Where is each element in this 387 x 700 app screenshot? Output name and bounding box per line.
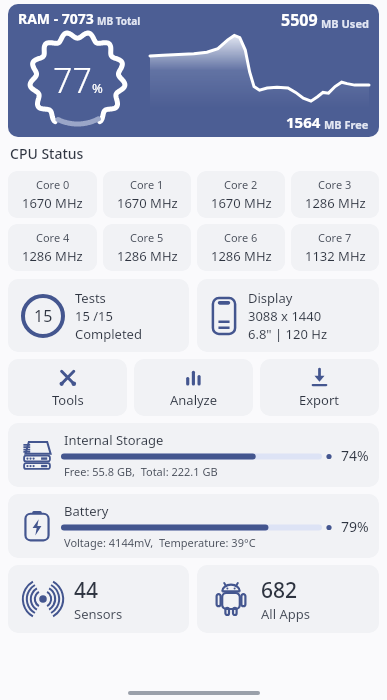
staticText: Analyze [170, 391, 218, 409]
staticText: 1132 MHz [305, 247, 366, 265]
staticText: Completed [75, 325, 142, 343]
staticText: 15 [34, 305, 53, 327]
staticText: 79% [341, 517, 369, 536]
staticText: 3088 x 1440 [248, 307, 322, 325]
staticText: 1286 MHz [117, 247, 178, 265]
button[interactable]: Core 1 [103, 171, 191, 218]
staticText: Voltage: 4144mV, Temperature: 39°C [64, 535, 256, 550]
staticText: 1670 MHz [211, 194, 272, 212]
staticText: Battery [64, 502, 109, 520]
staticText: Core 0 [36, 177, 70, 192]
button[interactable]: Core 6 [197, 224, 285, 271]
staticText: Tools [52, 391, 84, 409]
button[interactable]: 15 [8, 279, 189, 352]
staticText: Export [299, 391, 340, 409]
staticText: All Apps [261, 605, 310, 623]
staticText: MB Total [97, 14, 141, 28]
button[interactable]: 682 [197, 565, 379, 633]
button[interactable]: Tools [8, 359, 127, 416]
button[interactable]: Display [197, 279, 379, 352]
staticText: RAM - 7073 [18, 9, 94, 28]
staticText: 77 [53, 57, 92, 103]
staticText: 44 [74, 576, 99, 605]
button[interactable]: 44 [8, 565, 189, 633]
staticText: 5509 [281, 9, 318, 31]
button[interactable]: Core 0 [8, 171, 97, 218]
staticText: 1670 MHz [22, 194, 83, 212]
staticText: 1286 MHz [211, 247, 272, 265]
staticText: Tests [75, 289, 106, 307]
staticText: MB Free [324, 117, 369, 132]
button[interactable]: Core 5 [103, 224, 191, 271]
staticText: Core 7 [318, 230, 352, 245]
staticText: Core 4 [36, 230, 70, 245]
staticText: 682 [261, 576, 298, 605]
staticText: 1564 [286, 112, 321, 132]
staticText: MB Used [321, 16, 369, 31]
staticText: Core 3 [318, 177, 352, 192]
button[interactable]: Analyze [134, 359, 253, 416]
staticText: Internal Storage [64, 431, 164, 449]
button[interactable]: Core 7 [291, 224, 379, 271]
staticText: CPU Status [10, 144, 84, 163]
staticText: Free: 55.8 GB, Total: 222.1 GB [64, 464, 218, 479]
staticText: % [92, 79, 103, 97]
button[interactable]: Core 2 [197, 171, 285, 218]
staticText: Display [248, 289, 293, 307]
button[interactable]: RAM - 7073 [8, 4, 379, 137]
staticText: Sensors [74, 605, 123, 623]
staticText: 6.8" | 120 Hz [248, 325, 328, 343]
staticText: Core 1 [130, 177, 164, 192]
button[interactable]: Core 3 [291, 171, 379, 218]
staticText: Core 6 [224, 230, 258, 245]
button[interactable]: Core 4 [8, 224, 97, 271]
staticText: 74% [341, 446, 369, 465]
staticText: Core 2 [224, 177, 258, 192]
button[interactable]: Battery [8, 494, 379, 558]
staticText: 1286 MHz [305, 194, 366, 212]
button[interactable]: Export [260, 359, 379, 416]
button[interactable]: Internal Storage [8, 423, 379, 487]
staticText: 1286 MHz [22, 247, 83, 265]
staticText: Core 5 [130, 230, 164, 245]
staticText: 1670 MHz [117, 194, 178, 212]
staticText: 15 /15 [75, 307, 113, 325]
